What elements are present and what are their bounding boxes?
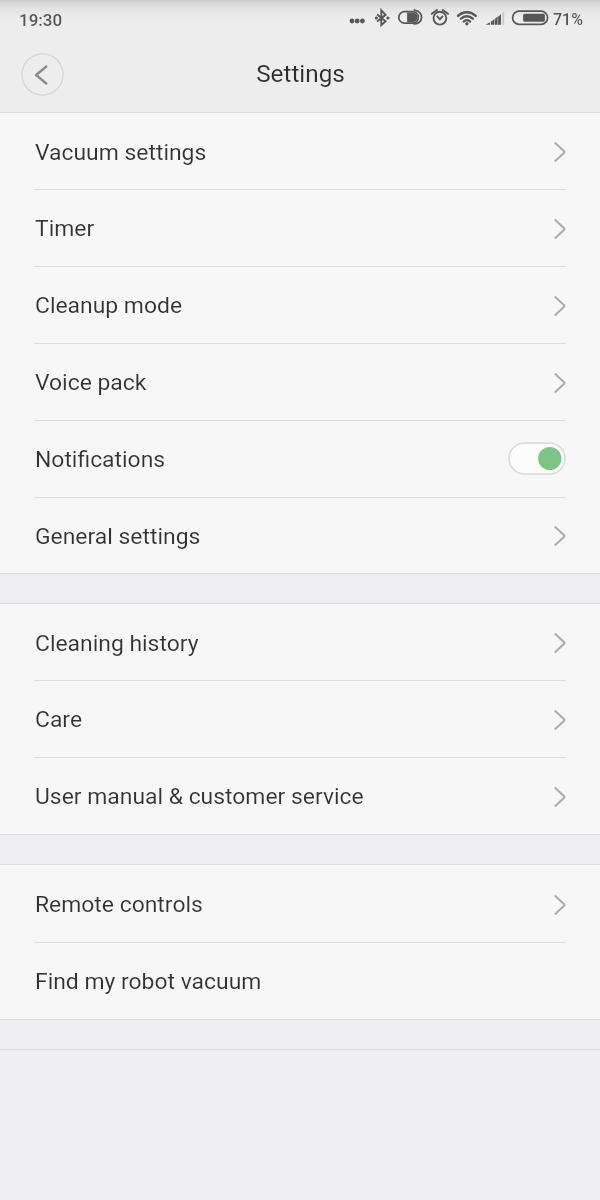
staticText: Vacuum settings <box>35 139 207 166</box>
button[interactable]: Cleanup mode <box>0 266 600 343</box>
staticText: Find my robot vacuum <box>35 968 262 995</box>
staticText: Cleaning history <box>35 630 199 657</box>
staticText: 19:30 <box>19 10 63 30</box>
staticText: Care <box>35 706 83 733</box>
button[interactable]: Notifications <box>0 420 600 497</box>
staticText: Voice pack <box>35 369 147 396</box>
staticText: Remote controls <box>35 891 203 918</box>
staticText: Settings <box>256 59 345 87</box>
staticText: Notifications <box>35 446 166 473</box>
button[interactable]: Timer <box>0 189 600 266</box>
button[interactable]: Cleaning history <box>0 604 600 680</box>
button[interactable]: Voice pack <box>0 343 600 420</box>
staticText: Timer <box>35 215 95 242</box>
button[interactable]: Back <box>21 53 64 96</box>
staticText: General settings <box>35 523 201 550</box>
button[interactable]: Remote controls <box>0 865 600 942</box>
button[interactable]: Vacuum settings <box>0 113 600 189</box>
staticText: 71% <box>553 10 583 29</box>
button[interactable]: Care <box>0 680 600 757</box>
staticText: User manual & customer service <box>35 783 364 810</box>
button[interactable]: General settings <box>0 497 600 573</box>
button[interactable]: User manual & customer service <box>0 757 600 834</box>
staticText: Cleanup mode <box>35 292 183 319</box>
button[interactable]: Find my robot vacuum <box>0 942 600 1019</box>
